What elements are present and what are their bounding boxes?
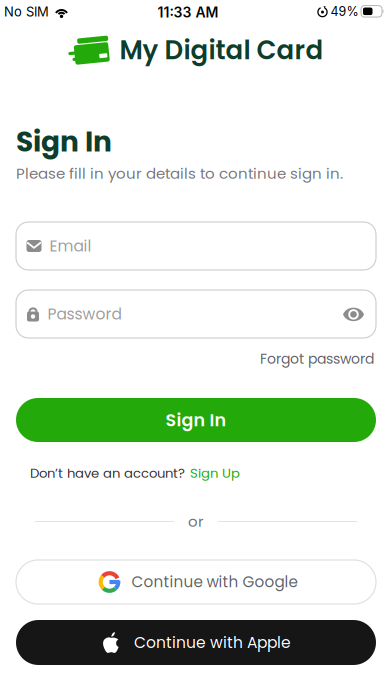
staticText: Sign In <box>16 122 112 161</box>
staticText: 49% <box>330 4 358 19</box>
staticText: 11:33 AM <box>157 4 218 21</box>
staticText: Please fill in your details to continue … <box>16 163 343 184</box>
button[interactable]: Sign In <box>16 398 376 442</box>
button[interactable]: Email <box>16 222 376 270</box>
button[interactable]: Continue with Google <box>16 560 376 604</box>
staticText: Email <box>49 235 91 257</box>
button[interactable]: Show password <box>342 307 376 321</box>
staticText: Don’t have an account? <box>30 464 185 482</box>
button[interactable]: Sign Up <box>190 464 240 482</box>
button[interactable]: Password <box>16 290 376 338</box>
staticText: or <box>188 511 204 532</box>
button[interactable]: Forgot password <box>260 349 374 369</box>
staticText: Password <box>47 303 121 325</box>
staticText: Sign In <box>165 408 226 432</box>
staticText: Continue with Apple <box>134 632 291 653</box>
button[interactable]: Continue with Apple <box>16 620 376 665</box>
staticText: My Digital Card <box>119 32 323 68</box>
staticText: Forgot password <box>260 349 374 369</box>
staticText: Continue with Google <box>131 571 297 593</box>
staticText: No SIM <box>4 4 49 20</box>
staticText: Sign Up <box>190 464 240 482</box>
